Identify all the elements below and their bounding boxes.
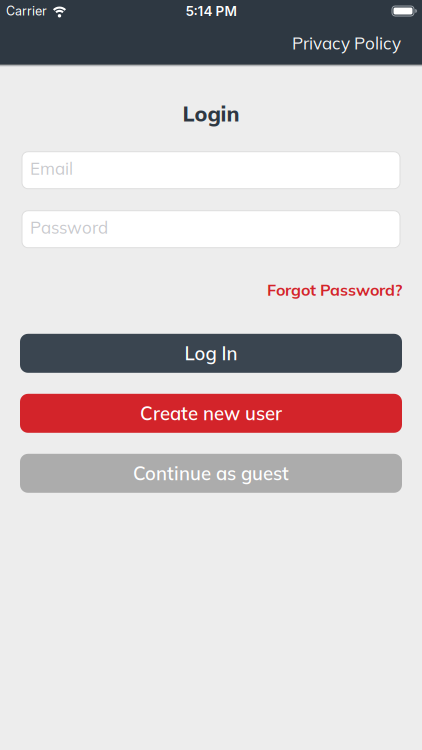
button[interactable]: Forgot Password?	[267, 280, 402, 300]
button[interactable]: Privacy Policy	[292, 32, 401, 54]
textField[interactable]: Email	[30, 158, 392, 179]
staticText: Create new user	[140, 402, 282, 425]
staticText: Password	[30, 217, 108, 238]
staticText: Carrier	[6, 3, 47, 18]
secureTextField[interactable]: Password	[30, 217, 392, 238]
staticText: Login	[182, 100, 239, 127]
button[interactable]: Continue as guest	[20, 454, 402, 493]
staticText: 5:14 PM	[185, 3, 236, 19]
staticText: Privacy Policy	[292, 32, 401, 54]
staticText: Email	[30, 158, 73, 179]
button[interactable]: Log In	[20, 334, 402, 373]
button[interactable]: Create new user	[20, 394, 402, 433]
staticText: Log In	[184, 342, 237, 365]
staticText: Forgot Password?	[267, 280, 402, 300]
staticText: Continue as guest	[133, 462, 289, 485]
